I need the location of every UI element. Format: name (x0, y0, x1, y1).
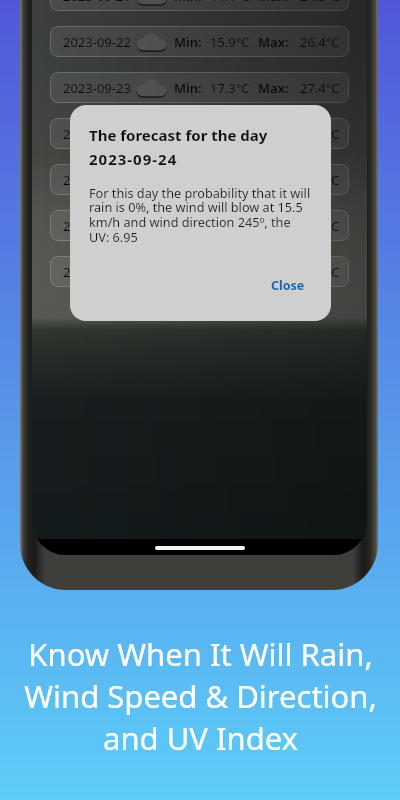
button[interactable]: 2023-09-25 (50, 164, 349, 195)
staticText: Min: (174, 217, 202, 235)
staticText: 17.3°C (210, 79, 250, 97)
button[interactable]: 2023-09-27 (50, 256, 349, 287)
staticText: 15.9°C (210, 33, 250, 51)
staticText: 2023-09-27 (63, 263, 131, 281)
staticText: Know When It Will Rain, (28, 633, 373, 675)
button[interactable]: 2023-09-22 (50, 26, 349, 57)
staticText: Wind Speed & Direction, (24, 675, 377, 717)
staticText: Max: (258, 263, 289, 281)
staticText: 2023-09-26 (63, 217, 131, 235)
button[interactable]: 2023-09-24 (50, 118, 349, 149)
staticText: 26.4°C (300, 33, 340, 51)
staticText: Min: (174, 125, 202, 143)
staticText: 2023-09-22 (63, 33, 131, 51)
staticText: 29.8°C (300, 263, 340, 281)
staticText: and UV Index (103, 717, 298, 759)
staticText: Max: (258, 217, 289, 235)
button[interactable]: Close (263, 271, 313, 300)
staticText: 18.1°C (210, 171, 250, 189)
staticText: 28.1°C (300, 125, 340, 143)
staticText: 2023-09-24 (63, 125, 131, 143)
staticText: 27.4°C (300, 79, 340, 97)
staticText: 2023-09-21 (63, 0, 131, 5)
staticText: Min: (174, 33, 202, 51)
staticText: 2023-09-23 (63, 79, 131, 97)
staticText: Max: (258, 79, 289, 97)
other: Cloudy (136, 216, 167, 236)
other: Cloudy (136, 78, 167, 98)
staticText: The forecast for the day (89, 125, 268, 145)
button[interactable]: 2023-09-23 (50, 72, 349, 103)
staticText: Min: (174, 0, 202, 5)
staticText: Min: (174, 79, 202, 97)
staticText: 14.1°C (210, 0, 250, 5)
other: Cloudy (136, 32, 167, 52)
button[interactable]: 2023-09-26 (50, 210, 349, 241)
other: Cloudy (136, 170, 167, 190)
staticText: 28.9°C (300, 171, 340, 189)
other: Cloudy (136, 0, 167, 6)
staticText: 2023-09-25 (63, 171, 131, 189)
button[interactable]: 2023-09-21 (50, 0, 349, 11)
staticText: Close (271, 277, 305, 294)
staticText: Max: (258, 33, 289, 51)
staticText: 17.9°C (210, 125, 250, 143)
staticText: 29.2°C (300, 217, 340, 235)
other: Cloudy (136, 124, 167, 144)
staticText: Max: (258, 125, 289, 143)
staticText: Max: (258, 171, 289, 189)
staticText: Max: (258, 0, 289, 5)
staticText: 2023-09-24 (89, 149, 178, 169)
staticText: 18.4°C (210, 217, 250, 235)
staticText: For this day the probability that it wil… (89, 184, 311, 246)
staticText: 24.3°C (300, 0, 340, 5)
